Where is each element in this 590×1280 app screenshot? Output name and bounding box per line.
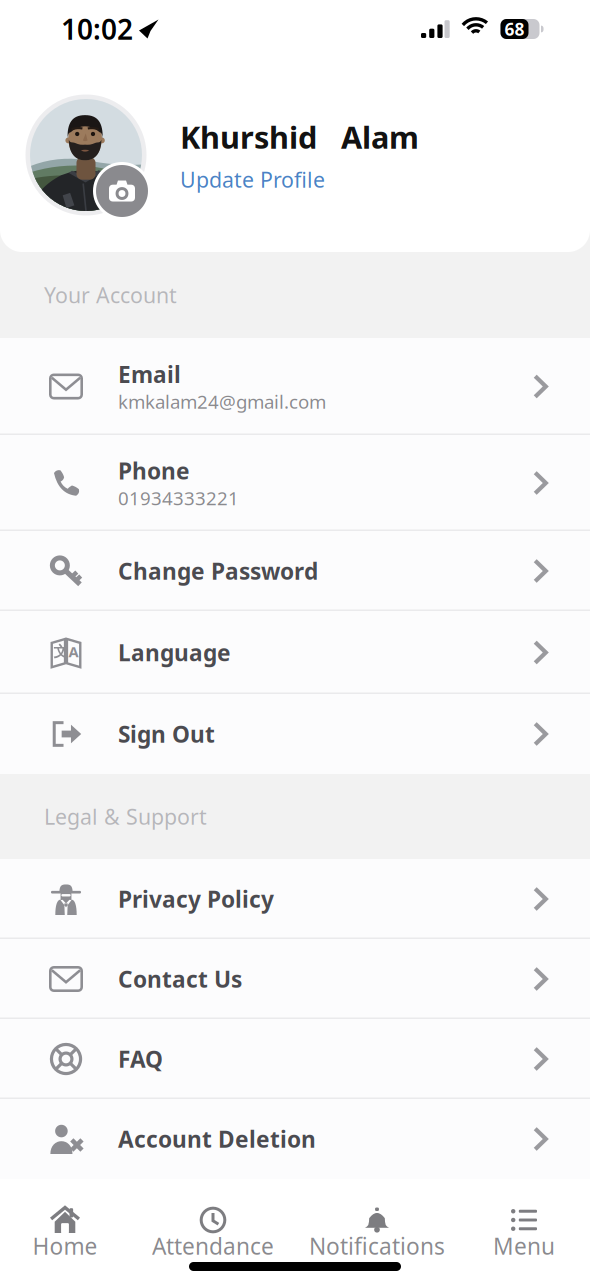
staticText: Sign Out — [118, 719, 215, 749]
staticText: Contact Us — [118, 964, 242, 994]
button[interactable]: Email — [0, 338, 590, 435]
button[interactable]: Home — [0, 1179, 130, 1280]
staticText: Phone — [118, 456, 190, 486]
button[interactable]: Account Deletion — [0, 1099, 590, 1179]
staticText: Home — [32, 1231, 97, 1261]
button[interactable]: Change profile photo — [21, 90, 151, 220]
button[interactable]: Notifications — [296, 1179, 458, 1280]
staticText: 01934333221 — [118, 486, 239, 510]
staticText: Privacy Policy — [118, 884, 274, 914]
staticText: Menu — [493, 1231, 555, 1261]
staticText: Email — [118, 359, 181, 389]
staticText: Update Profile — [180, 165, 325, 193]
staticText: Legal & Support — [44, 802, 207, 831]
staticText: Language — [118, 637, 231, 667]
button[interactable]: Change Password — [0, 531, 590, 611]
button[interactable]: Sign Out — [0, 694, 590, 774]
button[interactable]: Phone — [0, 435, 590, 531]
button[interactable]: FAQ — [0, 1019, 590, 1099]
button[interactable]: Privacy Policy — [0, 859, 590, 939]
staticText: Attendance — [152, 1231, 274, 1261]
staticText: kmkalam24@gmail.com — [118, 389, 326, 414]
button[interactable]: Update Profile — [180, 165, 325, 193]
button[interactable]: Attendance — [130, 1179, 296, 1280]
button[interactable]: Contact Us — [0, 939, 590, 1019]
staticText: 68 — [504, 17, 524, 40]
button[interactable]: Menu — [458, 1179, 590, 1280]
staticText: 文 — [53, 642, 68, 660]
staticText: Notifications — [309, 1231, 445, 1261]
staticText: A — [68, 642, 78, 661]
button[interactable]: 文 — [0, 611, 590, 694]
staticText: 10:02 — [61, 10, 133, 48]
staticText: Change Password — [118, 556, 318, 586]
staticText: Account Deletion — [118, 1124, 316, 1154]
staticText: FAQ — [118, 1044, 163, 1074]
staticText: Khurshid Alam — [180, 116, 419, 157]
staticText: Your Account — [44, 281, 177, 309]
